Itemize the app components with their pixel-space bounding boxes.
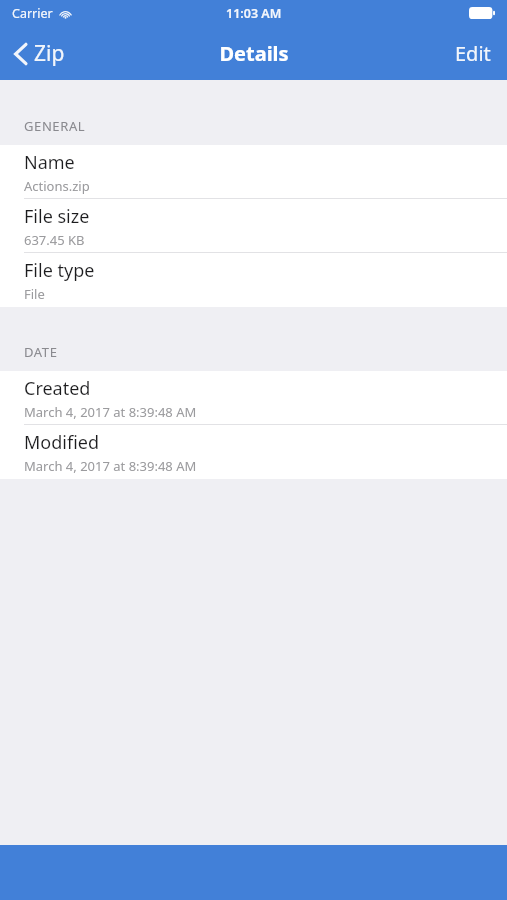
staticText: Zip — [34, 39, 65, 68]
staticText: 637.45 KB — [24, 231, 85, 249]
staticText: 11:03 AM — [226, 5, 282, 22]
staticText: Name — [24, 150, 75, 175]
staticText: March 4, 2017 at 8:39:48 AM — [24, 403, 197, 421]
staticText: File size — [24, 204, 90, 229]
button[interactable]: File type — [0, 253, 507, 307]
staticText: March 4, 2017 at 8:39:48 AM — [24, 457, 197, 475]
staticText: Created — [24, 376, 91, 401]
button[interactable]: Created — [0, 371, 507, 425]
staticText: DATE — [24, 343, 58, 361]
button[interactable]: Name — [0, 145, 507, 199]
button[interactable]: File size — [0, 199, 507, 253]
staticText: Details — [219, 40, 289, 67]
staticText: Actions.zip — [24, 177, 90, 195]
button[interactable]: Edit — [439, 32, 507, 75]
staticText: Edit — [455, 40, 491, 67]
staticText: GENERAL — [24, 117, 86, 135]
button[interactable]: Zip — [0, 31, 79, 76]
staticText: File — [24, 285, 45, 303]
staticText: Carrier — [12, 5, 53, 22]
button[interactable]: Modified — [0, 425, 507, 479]
staticText: Modified — [24, 430, 99, 455]
staticText: File type — [24, 258, 95, 283]
